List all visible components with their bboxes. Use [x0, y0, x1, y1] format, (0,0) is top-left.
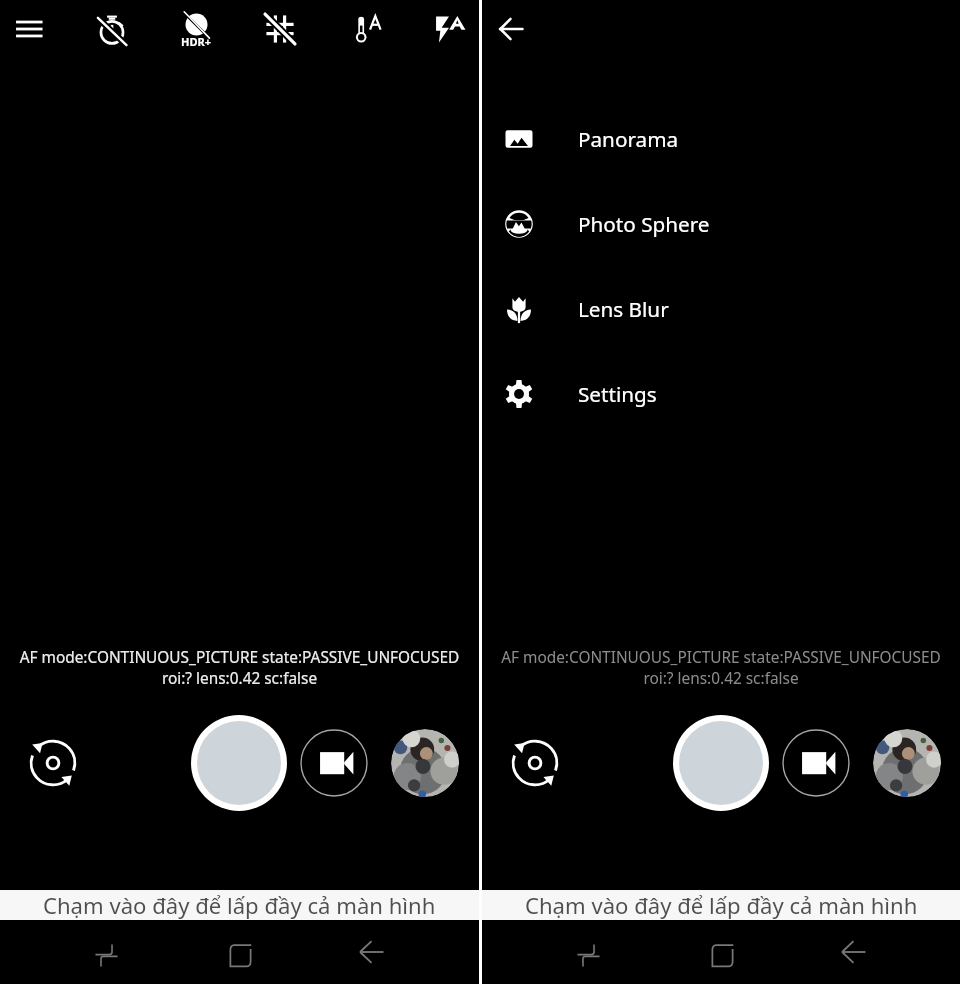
button[interactable]: HDR plus off	[172, 5, 220, 53]
staticText: Photo Sphere	[578, 210, 710, 238]
button[interactable]: Back	[829, 920, 877, 984]
staticText: Lens Blur	[578, 295, 669, 323]
button[interactable]: Panorama	[482, 96, 960, 181]
staticText: Panorama	[578, 125, 679, 153]
button[interactable]: White balance auto	[344, 5, 392, 53]
button[interactable]: Home	[698, 920, 746, 984]
button[interactable]: Photo Sphere	[482, 181, 960, 266]
button[interactable]: Back	[347, 920, 395, 984]
button[interactable]: Video	[782, 729, 850, 797]
staticText: AF mode:CONTINUOUS_PICTURE state:PASSIVE…	[0, 647, 479, 689]
button[interactable]: Timer off	[88, 5, 136, 53]
staticText: Chạm vào đây để lấp đầy cả màn hình	[525, 890, 918, 920]
button[interactable]: Recents	[82, 920, 130, 984]
button[interactable]: Grid off	[256, 5, 304, 53]
staticText: Chạm vào đây để lấp đầy cả màn hình	[43, 890, 436, 920]
staticText: Settings	[578, 380, 657, 408]
button[interactable]: Lens Blur	[482, 266, 960, 351]
button[interactable]: Gallery	[873, 729, 941, 797]
staticText: AF mode:CONTINUOUS_PICTURE state:PASSIVE…	[482, 647, 960, 689]
button[interactable]: Flash auto	[426, 5, 474, 53]
button[interactable]: Home	[216, 920, 264, 984]
button[interactable]: Settings	[482, 351, 960, 436]
button[interactable]: Switch camera	[507, 735, 563, 791]
staticText: HDR+	[181, 34, 211, 49]
button[interactable]: Shutter	[673, 715, 769, 811]
button[interactable]: Menu	[7, 5, 55, 53]
button[interactable]: Back	[489, 7, 533, 51]
button[interactable]: Shutter	[191, 715, 287, 811]
button[interactable]: Switch camera	[25, 735, 81, 791]
button[interactable]: Gallery	[391, 729, 459, 797]
button[interactable]: Recents	[564, 920, 612, 984]
button[interactable]: Video	[300, 729, 368, 797]
